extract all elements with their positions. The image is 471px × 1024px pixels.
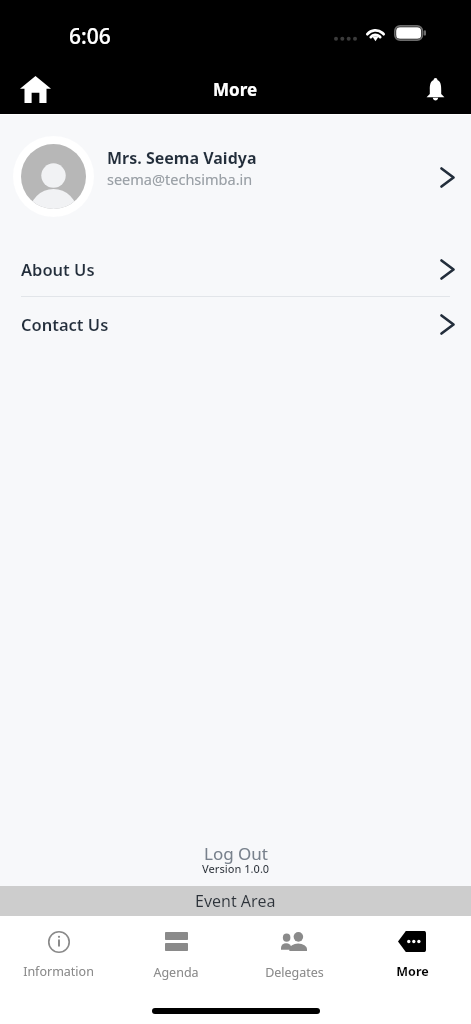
staticText: Information	[23, 963, 94, 980]
button[interactable]: More	[353, 916, 471, 980]
button[interactable]: Mrs. Seema Vaidya	[0, 113, 471, 240]
staticText: Event Area	[195, 890, 276, 912]
staticText: seema@techsimba.in	[107, 169, 253, 189]
staticText: Contact Us	[21, 313, 109, 335]
button[interactable]: Information	[0, 916, 117, 980]
button[interactable]: About Us	[0, 242, 471, 296]
staticText: Version 1.0.0	[202, 861, 270, 876]
staticText: 6:06	[69, 22, 111, 51]
staticText: Agenda	[153, 964, 199, 981]
button[interactable]: Contact Us	[0, 297, 471, 351]
staticText: About Us	[21, 258, 95, 280]
staticText: More	[396, 963, 429, 980]
staticText: Log Out	[204, 842, 268, 865]
staticText: More	[213, 78, 258, 101]
button[interactable]: Agenda	[117, 916, 235, 981]
button[interactable]: Log Out	[178, 842, 294, 865]
button[interactable]: Notifications	[411, 65, 459, 113]
staticText: Delegates	[265, 964, 324, 981]
button[interactable]: Home	[11, 65, 59, 113]
button[interactable]: Delegates	[235, 916, 353, 981]
staticText: Mrs. Seema Vaidya	[107, 147, 257, 169]
